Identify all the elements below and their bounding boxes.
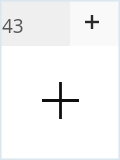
button[interactable]: Add item <box>42 82 79 119</box>
button[interactable]: Add <box>76 6 108 38</box>
button[interactable]: 43 <box>0 0 70 46</box>
staticText: 43 <box>2 13 24 39</box>
